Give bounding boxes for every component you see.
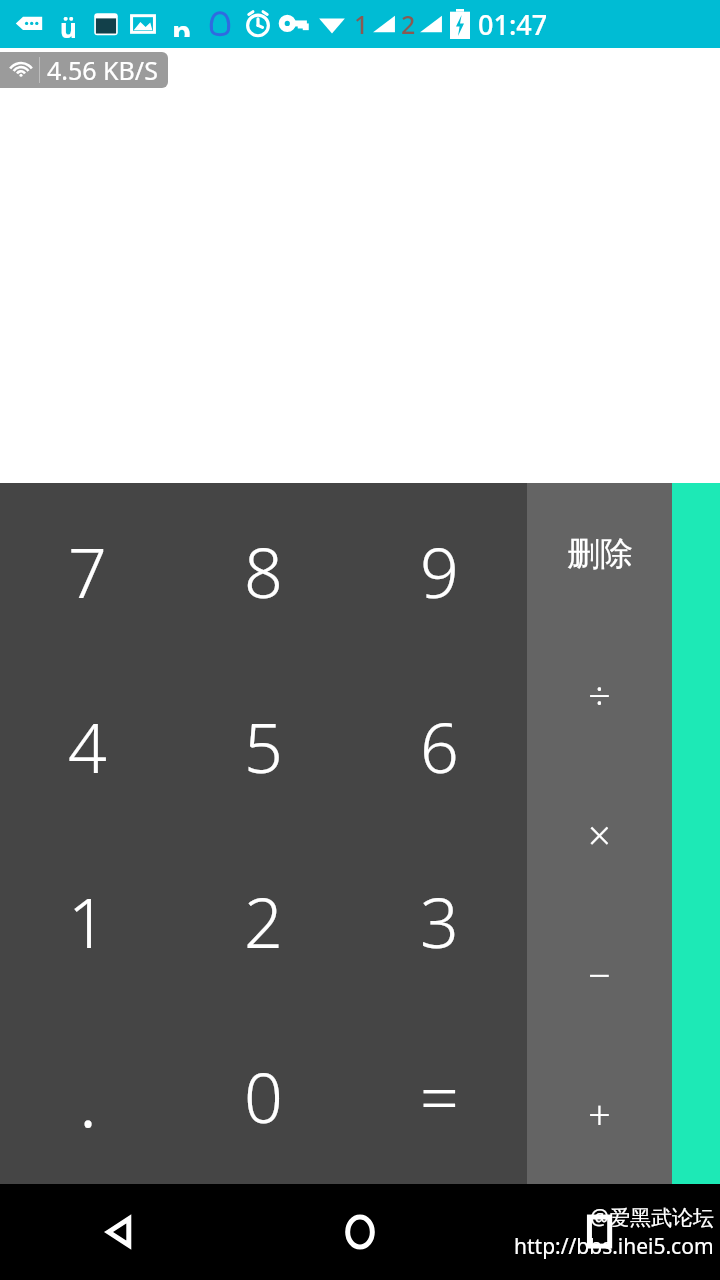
staticText: 9	[420, 525, 459, 618]
staticText: 8	[244, 525, 283, 618]
staticText: http://bbs.ihei5.com	[514, 1232, 714, 1261]
button[interactable]: ÷	[527, 624, 672, 764]
button[interactable]: 7	[0, 483, 175, 659]
button[interactable]: Recents	[480, 1184, 720, 1280]
staticText: 3	[420, 875, 459, 968]
button[interactable]: Home	[240, 1184, 480, 1280]
staticText: =	[420, 1050, 459, 1143]
button[interactable]: 3	[351, 834, 527, 1009]
button[interactable]: 8	[175, 483, 351, 659]
staticText: .	[78, 1044, 98, 1150]
staticText: +	[588, 1087, 611, 1141]
button[interactable]: 0	[175, 1009, 351, 1184]
button[interactable]: 删除	[527, 483, 672, 624]
staticText: 1	[354, 7, 369, 41]
button[interactable]: Back	[0, 1184, 240, 1280]
staticText: −	[588, 947, 611, 1001]
staticText: 2	[401, 7, 416, 41]
button[interactable]: 4	[0, 659, 175, 834]
staticText: 5	[244, 700, 283, 793]
staticText: p	[172, 11, 191, 37]
staticText: 4.56 KB/S	[47, 53, 158, 87]
button[interactable]: 1	[0, 834, 175, 1009]
button[interactable]: .	[0, 1009, 175, 1184]
button[interactable]: 2	[175, 834, 351, 1009]
staticText: 1	[68, 875, 107, 968]
button[interactable]: =	[351, 1009, 527, 1184]
staticText: 4	[68, 700, 107, 793]
staticText: ÷	[588, 667, 611, 721]
staticText: 6	[420, 700, 459, 793]
staticText: 删除	[567, 533, 633, 575]
staticText: 2	[244, 875, 283, 968]
staticText: 7	[68, 525, 107, 618]
button[interactable]: −	[527, 904, 672, 1044]
staticText: @爱黑武论坛	[590, 1203, 714, 1232]
button[interactable]: +	[527, 1044, 672, 1184]
staticText: 01:47	[478, 6, 548, 43]
button[interactable]: 9	[351, 483, 527, 659]
button[interactable]: ×	[527, 764, 672, 904]
staticText: ü	[60, 10, 77, 38]
button[interactable]: 5	[175, 659, 351, 834]
staticText: 0	[244, 1050, 283, 1143]
staticText: ×	[588, 807, 611, 861]
button[interactable]: 6	[351, 659, 527, 834]
